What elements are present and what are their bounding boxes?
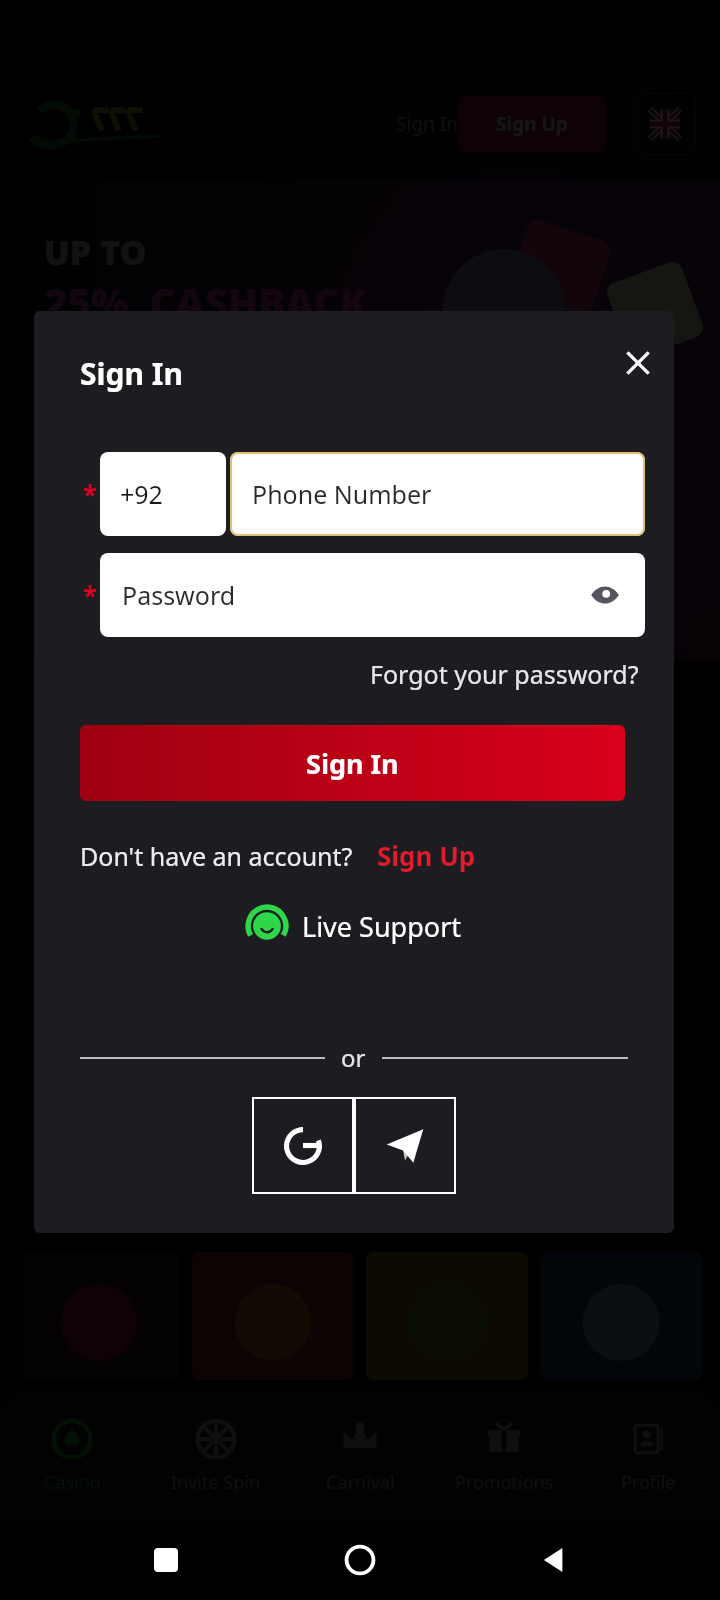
button[interactable]: [192, 1252, 354, 1380]
staticText: Forgot your password?: [370, 657, 639, 691]
button[interactable]: [540, 1252, 702, 1380]
staticText: 25% CASHBACK: [44, 275, 367, 329]
button[interactable]: Invite Spin: [144, 1390, 288, 1520]
button[interactable]: [18, 1252, 180, 1380]
button[interactable]: Show password: [583, 573, 627, 617]
staticText: Password: [122, 578, 236, 612]
button[interactable]: Sign In: [386, 103, 468, 145]
staticText: Invite Spin: [171, 1470, 261, 1495]
staticText: Live Support: [302, 908, 462, 945]
button[interactable]: [0, 0, 720, 1600]
staticText: Phone Number: [252, 477, 432, 511]
button[interactable]: Sign Up: [373, 834, 480, 877]
staticText: Carnival: [326, 1470, 395, 1495]
button[interactable]: Phone Number: [230, 452, 645, 536]
staticText: Sign In: [396, 111, 458, 137]
staticText: Sign Up: [496, 111, 568, 137]
staticText: *: [80, 477, 100, 512]
button[interactable]: Recents: [138, 1532, 194, 1588]
staticText: Sign Up: [377, 838, 476, 873]
button[interactable]: Sign in with Telegram: [354, 1097, 456, 1194]
button[interactable]: Sign Up: [459, 96, 605, 152]
button[interactable]: Password: [100, 553, 645, 637]
staticText: Casino: [44, 1470, 101, 1495]
button[interactable]: Forgot your password?: [364, 651, 645, 697]
button[interactable]: Back: [526, 1532, 582, 1588]
staticText: or: [341, 1041, 366, 1074]
button[interactable]: Live Support: [240, 899, 468, 953]
staticText: Promotions: [455, 1470, 554, 1495]
button[interactable]: Sign In: [80, 725, 625, 801]
staticText: Sign In: [80, 353, 183, 394]
staticText: *: [80, 578, 100, 613]
button[interactable]: Sign in with Google: [252, 1097, 354, 1194]
button[interactable]: Home: [332, 1532, 388, 1588]
staticText: Sign In: [306, 745, 399, 782]
button[interactable]: Language: [634, 93, 696, 155]
button[interactable]: +92: [100, 452, 226, 536]
staticText: UP TO: [44, 229, 147, 275]
button[interactable]: Close: [604, 329, 672, 397]
staticText: +92: [120, 477, 163, 511]
staticText: Profile: [621, 1470, 676, 1495]
staticText: Don't have an account?: [80, 839, 353, 873]
